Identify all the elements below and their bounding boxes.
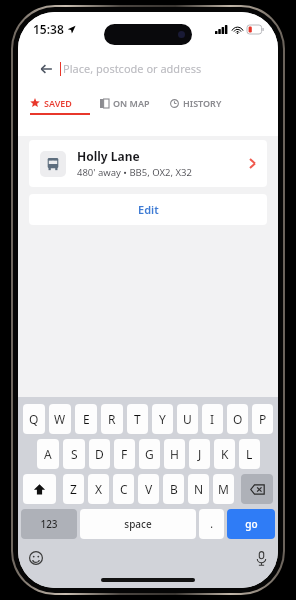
staticText: X <box>95 481 103 497</box>
button[interactable]: J <box>189 439 210 469</box>
staticText: Q <box>29 411 39 427</box>
button[interactable]: A <box>37 439 59 469</box>
button[interactable]: Back <box>28 54 268 82</box>
button[interactable]: Holly Lane <box>29 140 267 187</box>
button[interactable]: Q <box>23 404 45 434</box>
staticText: U <box>183 411 192 427</box>
staticText: E <box>83 411 90 427</box>
staticText: . <box>210 517 213 531</box>
staticText: B <box>170 481 178 497</box>
button[interactable]: Emoji <box>29 551 43 565</box>
button[interactable]: R <box>101 404 123 434</box>
button[interactable]: D <box>89 439 110 469</box>
button[interactable]: W <box>49 404 71 434</box>
staticText: K <box>221 446 229 462</box>
button[interactable]: SAVED <box>30 90 72 116</box>
button[interactable]: X <box>88 474 109 504</box>
button[interactable]: Key <box>241 474 273 504</box>
staticText: Z <box>70 481 77 497</box>
staticText: ON MAP <box>113 97 150 109</box>
staticText: S <box>71 446 78 462</box>
button[interactable]: HISTORY <box>170 90 222 116</box>
staticText: P <box>259 411 267 427</box>
staticText: Place, postcode or address <box>63 61 202 76</box>
button[interactable]: Dictation <box>256 551 267 566</box>
staticText: F <box>121 446 128 462</box>
staticText: HISTORY <box>183 97 222 109</box>
button[interactable]: N <box>188 474 209 504</box>
staticText: Edit <box>138 202 159 217</box>
button[interactable]: E <box>75 404 97 434</box>
staticText: Y <box>159 411 166 427</box>
button[interactable]: H <box>164 439 185 469</box>
button[interactable]: go <box>227 509 275 539</box>
staticText: M <box>218 481 229 497</box>
button[interactable]: P <box>252 404 273 434</box>
button[interactable]: U <box>177 404 198 434</box>
button[interactable]: G <box>139 439 160 469</box>
staticText: O <box>233 411 243 427</box>
button[interactable]: Key <box>23 474 56 504</box>
button[interactable]: K <box>214 439 235 469</box>
button[interactable]: Y <box>152 404 173 434</box>
other: Back <box>39 62 53 76</box>
button[interactable]: ON MAP <box>100 90 150 116</box>
staticText: V <box>145 481 153 497</box>
button[interactable]: F <box>114 439 135 469</box>
button[interactable]: L <box>239 439 260 469</box>
staticText: 123 <box>40 517 58 531</box>
staticText: H <box>170 446 179 462</box>
staticText: G <box>145 446 154 462</box>
button[interactable]: M <box>213 474 234 504</box>
staticText: C <box>120 481 128 497</box>
staticText: R <box>108 411 116 427</box>
staticText: go <box>245 517 258 531</box>
button[interactable]: T <box>127 404 148 434</box>
staticText: J <box>198 446 202 462</box>
staticText: D <box>95 446 104 462</box>
staticText: T <box>134 411 141 427</box>
staticText: 15:38 <box>33 21 64 37</box>
button[interactable]: C <box>113 474 134 504</box>
button[interactable]: O <box>227 404 248 434</box>
staticText: W <box>54 411 66 427</box>
button[interactable]: 123 <box>21 509 77 539</box>
button[interactable]: Z <box>63 474 84 504</box>
staticText: L <box>246 446 253 462</box>
staticText: 480' away • BB5, OX2, X32 <box>77 166 192 179</box>
button[interactable]: space <box>80 509 196 539</box>
button[interactable]: . <box>199 509 224 539</box>
staticText: N <box>194 481 204 497</box>
button[interactable]: S <box>63 439 85 469</box>
button[interactable]: I <box>202 404 223 434</box>
staticText: A <box>44 446 52 462</box>
staticText: I <box>210 411 215 427</box>
button[interactable]: B <box>163 474 184 504</box>
button[interactable]: Edit <box>29 194 267 225</box>
staticText: SAVED <box>44 97 72 109</box>
staticText: Holly Lane <box>77 148 140 164</box>
staticText: space <box>124 517 152 531</box>
button[interactable]: V <box>138 474 159 504</box>
